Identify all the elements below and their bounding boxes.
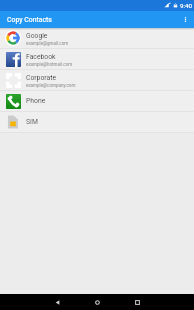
button[interactable]: Facebook bbox=[0, 49, 194, 69]
staticText: Corporate bbox=[26, 74, 56, 82]
staticText: Google bbox=[26, 32, 48, 40]
button[interactable]: Recents bbox=[117, 294, 157, 310]
staticText: SIM bbox=[26, 118, 38, 126]
staticText: example@gmail.com bbox=[26, 41, 69, 46]
staticText: example@hotmail.com bbox=[26, 62, 73, 67]
staticText: example@company.com bbox=[26, 83, 76, 88]
button[interactable]: SIM bbox=[0, 112, 194, 132]
staticText: Phone bbox=[26, 97, 46, 105]
button[interactable]: Back bbox=[37, 294, 77, 310]
button[interactable]: Phone bbox=[0, 91, 194, 111]
button[interactable]: Corporate bbox=[0, 70, 194, 90]
button[interactable]: More options bbox=[176, 11, 194, 28]
button[interactable]: Home bbox=[77, 294, 117, 310]
staticText: 9:40 bbox=[180, 2, 192, 9]
button[interactable]: Google bbox=[0, 28, 194, 48]
staticText: Facebook bbox=[26, 53, 56, 61]
staticText: Copy Contacts bbox=[7, 16, 52, 24]
